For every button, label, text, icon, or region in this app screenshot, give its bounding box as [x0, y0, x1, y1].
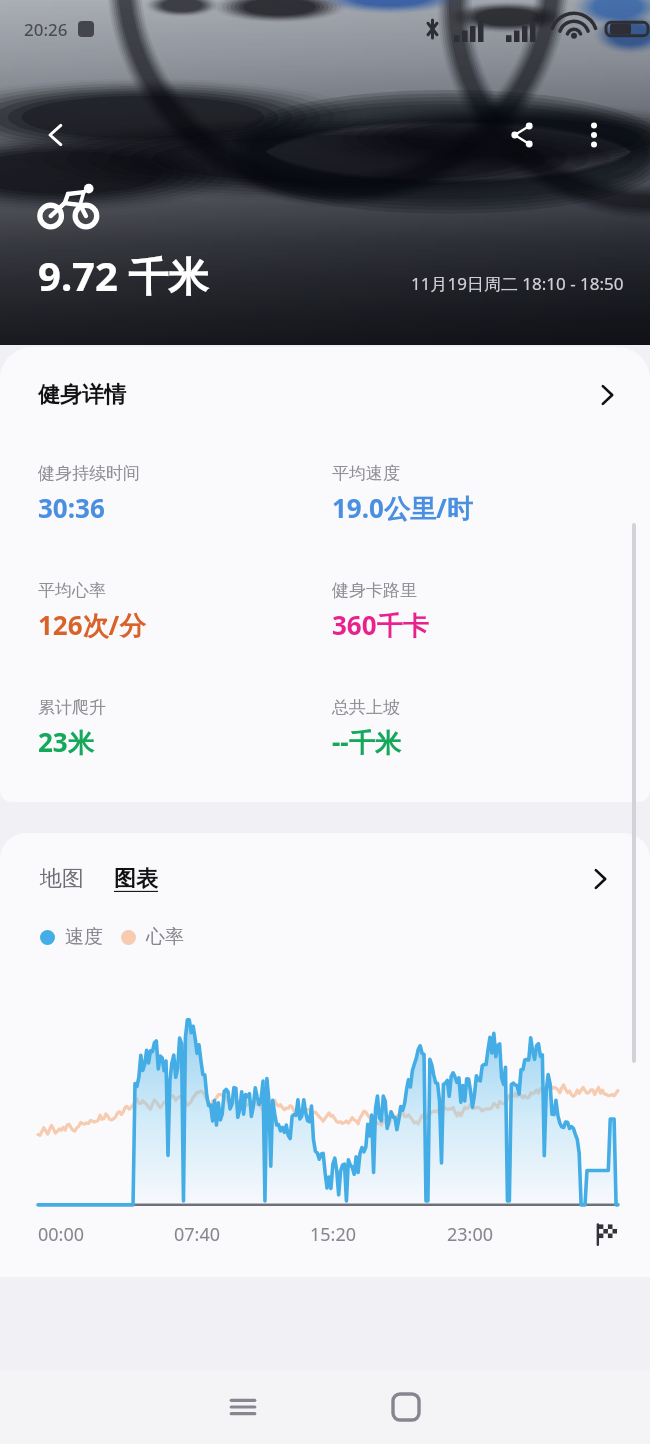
staticText: 健身卡路里 [332, 580, 417, 601]
staticText: 23米 [38, 724, 94, 760]
staticText: 19.0公里/时 [332, 490, 473, 526]
button[interactable]: Back [30, 109, 82, 161]
staticText: 心率 [146, 925, 184, 949]
button[interactable]: 地图 [38, 859, 86, 899]
button[interactable]: 图表 [112, 859, 160, 899]
staticText: 11月19日周二 18:10 - 18:50 [411, 272, 624, 295]
staticText: 健身详情 [38, 381, 126, 409]
staticText: 20:26 [24, 18, 68, 41]
staticText: 总共上坡 [332, 697, 400, 718]
staticText: 00:00 [38, 1222, 85, 1247]
staticText: 速度 [65, 925, 103, 949]
staticText: 15:20 [310, 1222, 357, 1247]
staticText: --千米 [332, 724, 401, 760]
staticText: 360千卡 [332, 607, 429, 643]
button[interactable]: Expand chart [580, 859, 620, 899]
button[interactable]: Recent apps [162, 1370, 324, 1444]
staticText: 平均速度 [332, 463, 400, 484]
staticText: 23:00 [447, 1222, 494, 1247]
staticText: 126次/分 [38, 607, 146, 643]
staticText: 地图 [40, 865, 84, 893]
button[interactable]: 健身详情 [0, 347, 650, 443]
staticText: 健身持续时间 [38, 463, 140, 484]
staticText: 平均心率 [38, 580, 106, 601]
button[interactable]: Home [324, 1370, 487, 1444]
staticText: 07:40 [174, 1222, 221, 1247]
button[interactable]: More options [568, 109, 620, 161]
button[interactable]: Share [496, 109, 548, 161]
staticText: 30:36 [38, 490, 105, 525]
staticText: 累计爬升 [38, 697, 106, 718]
staticText: 图表 [114, 865, 158, 893]
staticText: 9.72 千米 [38, 248, 209, 303]
